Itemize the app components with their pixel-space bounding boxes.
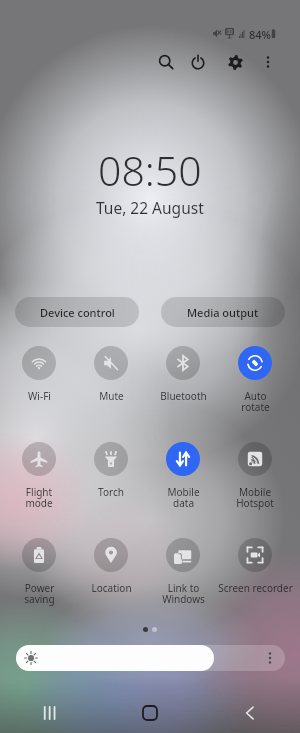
staticText: Device control: [40, 305, 115, 320]
button[interactable]: Link to Windows: [147, 538, 219, 606]
button[interactable]: Device control: [15, 297, 139, 327]
button[interactable]: More options: [254, 48, 282, 76]
staticText: Wi-Fi: [28, 389, 51, 403]
button[interactable]: Media output: [161, 297, 285, 327]
button[interactable]: Mute: [75, 346, 147, 403]
button[interactable]: Screen recorder: [208, 538, 300, 595]
button[interactable]: Recent apps: [30, 693, 70, 733]
button[interactable]: Power: [184, 48, 212, 76]
button[interactable]: Wi-Fi: [3, 346, 75, 403]
staticText: Flight mode: [25, 485, 53, 510]
staticText: 08:50: [98, 142, 202, 198]
button[interactable]: Back: [230, 693, 270, 733]
staticText: Tue, 22 August: [96, 197, 204, 218]
other: Brightness options: [263, 651, 277, 665]
button[interactable]: Flight mode: [3, 442, 75, 510]
staticText: Mobile Hotspot: [236, 485, 274, 510]
button[interactable]: Auto rotate: [219, 346, 291, 414]
button[interactable]: Mobile data: [147, 442, 219, 510]
staticText: Media output: [187, 305, 259, 320]
button[interactable]: Search: [152, 48, 180, 76]
button[interactable]: Mobile Hotspot: [219, 442, 291, 510]
staticText: Power saving: [24, 581, 55, 606]
button[interactable]: Torch: [75, 442, 147, 499]
button[interactable]: Bluetooth: [147, 346, 219, 403]
staticText: Location: [91, 581, 132, 595]
button[interactable]: Settings: [221, 48, 249, 76]
staticText: 84%: [249, 27, 271, 42]
staticText: Auto rotate: [241, 389, 270, 414]
staticText: Mobile data: [167, 485, 200, 510]
staticText: Mute: [99, 389, 124, 403]
staticText: Torch: [98, 485, 124, 499]
button[interactable]: Power saving: [3, 538, 75, 606]
button[interactable]: [16, 645, 285, 671]
staticText: Screen recorder: [218, 581, 293, 595]
staticText: Bluetooth: [160, 389, 207, 403]
button[interactable]: Location: [75, 538, 147, 595]
button[interactable]: Home: [130, 693, 170, 733]
staticText: Link to Windows: [162, 581, 205, 606]
